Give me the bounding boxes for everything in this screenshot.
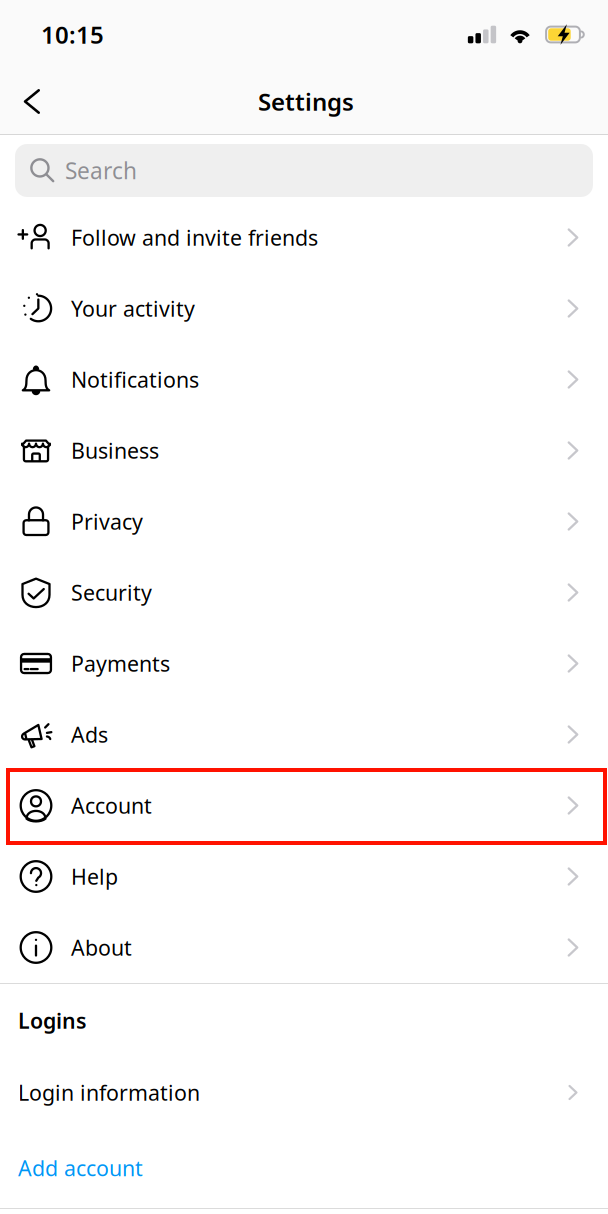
staticText: Settings [258,86,354,117]
staticText: Payments [71,649,170,678]
button[interactable]: Help [0,841,608,912]
staticText: Your activity [71,294,195,323]
button[interactable]: Notifications [0,344,608,415]
button[interactable]: Follow and invite friends [0,202,608,273]
staticText: Logins [18,1006,87,1035]
staticText: Help [71,862,118,891]
staticText: Account [71,791,152,820]
staticText: Follow and invite friends [71,223,318,252]
button[interactable]: Your activity [0,273,608,344]
button[interactable]: Security [0,557,608,628]
staticText: Login information [18,1078,200,1107]
staticText: Business [71,436,159,465]
staticText: Search [65,155,137,185]
staticText: Security [71,578,152,607]
staticText: 10:15 [41,19,104,50]
staticText: Notifications [71,365,199,394]
button[interactable]: Business [0,415,608,486]
button[interactable]: Back [0,69,64,134]
staticText: About [71,933,132,962]
staticText: Privacy [71,507,143,536]
button[interactable]: Payments [0,628,608,699]
button[interactable]: Ads [0,699,608,770]
button[interactable]: Add account [0,1128,608,1208]
button[interactable]: About [0,912,608,983]
staticText: Ads [71,720,108,749]
button[interactable]: Account [0,770,608,841]
button[interactable]: Privacy [0,486,608,557]
button[interactable]: Login information [0,1057,608,1128]
staticText: Add account [18,1154,143,1182]
